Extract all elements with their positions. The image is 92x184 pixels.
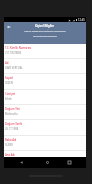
staticText: Kişisel Bilgiler	[35, 24, 55, 28]
staticText: 31173678086	[5, 51, 22, 55]
button[interactable]: Doğum Tarihi	[4, 119, 86, 134]
staticText: 12:45	[78, 18, 85, 22]
staticText: Ad	[5, 61, 9, 65]
staticText: Cinsiyet	[5, 92, 16, 96]
staticText: Erkek	[5, 97, 12, 101]
button[interactable]: Recent apps	[65, 158, 73, 166]
staticText: Ana Adı	[5, 153, 15, 157]
staticText: 26.17.1988	[5, 127, 19, 131]
staticText: SÜREK	[5, 143, 13, 147]
button[interactable]: Home	[43, 158, 51, 166]
button[interactable]: Back	[5, 23, 12, 30]
staticText: Baba Adı	[5, 138, 17, 142]
staticText: Doğum Yeri	[5, 107, 21, 111]
button[interactable]: Doğum Yeri	[4, 104, 86, 119]
button[interactable]: Back	[17, 158, 25, 166]
staticText: SEZEN	[5, 81, 13, 85]
staticText: HARİ VERTUAL	[5, 66, 23, 70]
button[interactable]: Ana Adı	[4, 150, 86, 165]
button[interactable]: Cinsiyet	[4, 89, 86, 104]
button[interactable]: Baba Adı	[4, 135, 86, 150]
staticText: Kişisel bilgileriniz aşağıdaki alanlarda…	[4, 30, 86, 37]
staticText: Doğum Tarihi	[5, 122, 23, 126]
staticText: Soyad	[5, 76, 13, 80]
button[interactable]: Soyad	[4, 73, 86, 88]
button[interactable]: Ad	[4, 58, 86, 73]
staticText: T.C. Kimlik Numarası	[5, 46, 32, 50]
staticText: Mahmutlu	[5, 112, 18, 116]
button[interactable]: T.C. Kimlik Numarası	[4, 43, 86, 58]
